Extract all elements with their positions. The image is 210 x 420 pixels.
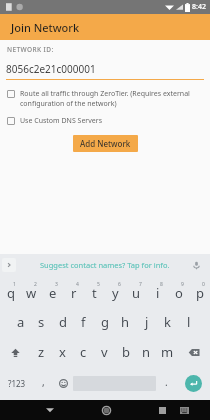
staticText: z <box>38 343 45 361</box>
button[interactable]: 1 <box>0 276 21 307</box>
staticText: , <box>42 375 45 389</box>
button[interactable]: l <box>178 307 199 337</box>
staticText: g <box>101 313 109 331</box>
staticText: u <box>132 284 141 302</box>
button[interactable]: 7 <box>126 276 147 307</box>
button[interactable]: b <box>115 337 136 367</box>
staticText: j <box>145 313 149 331</box>
staticText: d <box>59 313 67 331</box>
button[interactable]: Shift <box>0 337 31 367</box>
staticText: l <box>187 313 191 331</box>
button[interactable]: j <box>136 307 157 337</box>
button[interactable]: n <box>136 337 157 367</box>
button[interactable]: Home <box>97 401 115 419</box>
staticText: 8056c2e21c000001 <box>6 62 96 76</box>
staticText: 6 <box>118 281 121 288</box>
staticText: e <box>49 284 57 302</box>
staticText: Join Network <box>11 20 80 35</box>
button[interactable]: Back <box>41 401 59 419</box>
staticText: y <box>112 284 119 302</box>
staticText: x <box>59 343 66 361</box>
staticText: 8:42 <box>192 2 206 12</box>
staticText: q <box>7 284 15 302</box>
staticText: m <box>161 343 174 361</box>
button[interactable]: . <box>156 367 176 400</box>
button[interactable]: 5 <box>84 276 105 307</box>
button[interactable]: 8 <box>147 276 168 307</box>
button[interactable]: Emoji <box>53 367 73 400</box>
staticText: 4 <box>76 281 79 288</box>
button[interactable]: Add Network <box>73 135 138 152</box>
button[interactable]: Expand suggestions <box>2 258 16 272</box>
button[interactable]: k <box>157 307 178 337</box>
staticText: i <box>156 284 160 302</box>
staticText: configuration of the network) <box>20 99 117 109</box>
button[interactable]: Use Custom DNS Servers <box>0 114 210 128</box>
button[interactable]: g <box>94 307 115 337</box>
staticText: Use Custom DNS Servers <box>20 116 102 126</box>
staticText: n <box>142 343 151 361</box>
button[interactable]: c <box>73 337 94 367</box>
staticText: NETWORK ID: <box>7 45 54 54</box>
button[interactable]: Backspace <box>178 337 210 367</box>
button[interactable]: x <box>52 337 73 367</box>
staticText: k <box>164 313 171 331</box>
button[interactable]: , <box>33 367 53 400</box>
staticText: 1 <box>13 281 16 288</box>
button[interactable]: ?123 <box>0 367 33 400</box>
staticText: 5 <box>97 281 100 288</box>
button[interactable]: 2 <box>21 276 42 307</box>
button[interactable]: d <box>52 307 73 337</box>
button[interactable]: Keyboard active <box>175 401 193 419</box>
button[interactable]: 6 <box>105 276 126 307</box>
staticText: s <box>38 313 45 331</box>
button[interactable]: 0 <box>189 276 210 307</box>
staticText: 0 <box>202 281 205 288</box>
button[interactable]: 8056c2e21c000001 <box>6 62 204 80</box>
staticText: Add Network <box>80 138 131 149</box>
button[interactable]: h <box>115 307 136 337</box>
button[interactable]: Route all traffic through ZeroTier. (Req… <box>0 87 210 111</box>
button[interactable]: f <box>73 307 94 337</box>
staticText: . <box>165 375 168 389</box>
staticText: b <box>122 343 130 361</box>
button[interactable]: Suggest contact names? Tap for info. <box>40 260 170 270</box>
staticText: p <box>196 284 204 302</box>
button[interactable]: 3 <box>42 276 63 307</box>
staticText: f <box>81 313 86 331</box>
staticText: 8 <box>160 281 163 288</box>
staticText: 2 <box>34 281 37 288</box>
button[interactable]: z <box>31 337 52 367</box>
button[interactable]: m <box>157 337 178 367</box>
button[interactable]: Join Network <box>0 14 210 40</box>
button[interactable]: Recent apps <box>153 401 171 419</box>
staticText: 3 <box>55 281 58 288</box>
staticText: Route all traffic through ZeroTier. (Req… <box>20 89 190 99</box>
staticText: w <box>26 284 37 302</box>
button[interactable]: v <box>94 337 115 367</box>
button[interactable]: 9 <box>168 276 189 307</box>
button[interactable]: 4 <box>63 276 84 307</box>
staticText: 9 <box>181 281 184 288</box>
staticText: ?123 <box>8 378 26 389</box>
staticText: a <box>17 313 25 331</box>
button[interactable]: Voice input <box>190 259 202 271</box>
button[interactable]: s <box>31 307 52 337</box>
staticText: c <box>80 343 87 361</box>
staticText: v <box>101 343 108 361</box>
button[interactable]: Enter <box>176 367 210 400</box>
staticText: o <box>175 284 183 302</box>
staticText: t <box>92 284 97 302</box>
staticText: 7 <box>139 281 142 288</box>
staticText: r <box>71 284 77 302</box>
staticText: h <box>121 313 130 331</box>
button[interactable]: a <box>10 307 31 337</box>
